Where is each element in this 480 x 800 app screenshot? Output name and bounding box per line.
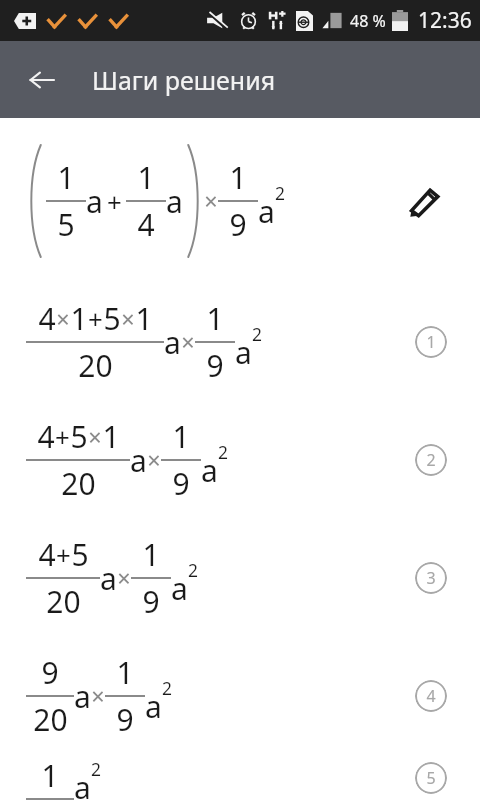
staticText: 20 [33,699,68,740]
staticText: a [201,450,218,491]
button[interactable]: 2 [415,444,447,476]
staticText: 9 [229,204,247,245]
staticText: a [74,767,91,800]
staticText: 1 [70,298,88,339]
staticText: 9 [41,652,59,693]
staticText: 48 % [350,10,386,32]
staticText: 4 [137,204,155,245]
staticText: × [181,326,195,358]
staticText: a [258,191,275,232]
staticText: 2 [91,757,101,781]
button[interactable]: 4 [415,680,447,712]
staticText: 1 [206,298,224,339]
staticText: Шаги решения [92,63,276,97]
button[interactable]: 5 [415,762,447,794]
staticText: × [88,421,102,453]
staticText: 1 [135,298,153,339]
staticText: 20 [46,581,81,622]
staticText: a [100,558,117,599]
staticText: 1 [137,157,155,198]
staticText: 5 [57,204,75,245]
staticText: 12:36 [418,6,472,35]
staticText: × [204,185,218,217]
staticText: 5 [426,767,436,789]
staticText: a [171,568,188,609]
staticText: 9 [142,581,160,622]
staticText: 4 [38,534,56,575]
staticText: × [121,303,135,335]
staticText: 1 [142,534,160,575]
staticText: × [91,680,105,712]
staticText: 20 [61,463,96,504]
button[interactable]: Back [20,58,64,102]
staticText: + [88,301,103,336]
button[interactable]: 4 [0,283,480,401]
staticText: a [86,181,103,222]
staticText: 3 [426,567,436,589]
staticText: + [56,537,71,572]
button[interactable]: 4 [0,401,480,519]
staticText: 2 [218,440,228,464]
staticText: 20 [78,345,113,386]
staticText: 1 [426,331,436,353]
staticText: × [56,303,70,335]
staticText: a [145,686,162,727]
staticText: 9 [172,463,190,504]
staticText: 9 [116,699,134,740]
staticText: 1 [57,157,75,198]
staticText: 4 [38,298,56,339]
staticText: 9 [206,345,224,386]
staticText: 2 [188,558,198,582]
staticText: 2 [275,181,285,205]
button[interactable]: 3 [415,562,447,594]
staticText: 2 [426,449,436,471]
staticText: 4 [37,416,55,457]
staticText: a [130,440,147,481]
button[interactable]: 1 [0,118,480,283]
staticText: 1 [229,157,247,198]
staticText: 5 [70,416,88,457]
staticText: 2 [252,322,262,346]
staticText: 1 [41,755,59,796]
button[interactable]: 1 [0,755,480,800]
staticText: 1 [172,416,190,457]
staticText: 1 [102,416,120,457]
staticText: 5 [103,298,121,339]
staticText: a [166,181,183,222]
staticText: × [117,562,131,594]
button[interactable]: 1 [415,326,447,358]
staticText: + [107,184,122,219]
staticText: 5 [71,534,89,575]
staticText: a [235,332,252,373]
staticText: 4 [426,685,436,707]
staticText: a [74,676,91,717]
staticText: 2 [162,676,172,700]
staticText: 1 [116,652,134,693]
button[interactable]: Edit [403,179,447,223]
staticText: × [147,444,161,476]
button[interactable]: 9 [0,637,480,755]
staticText: + [55,419,70,454]
staticText: a [164,322,181,363]
button[interactable]: 4 [0,519,480,637]
